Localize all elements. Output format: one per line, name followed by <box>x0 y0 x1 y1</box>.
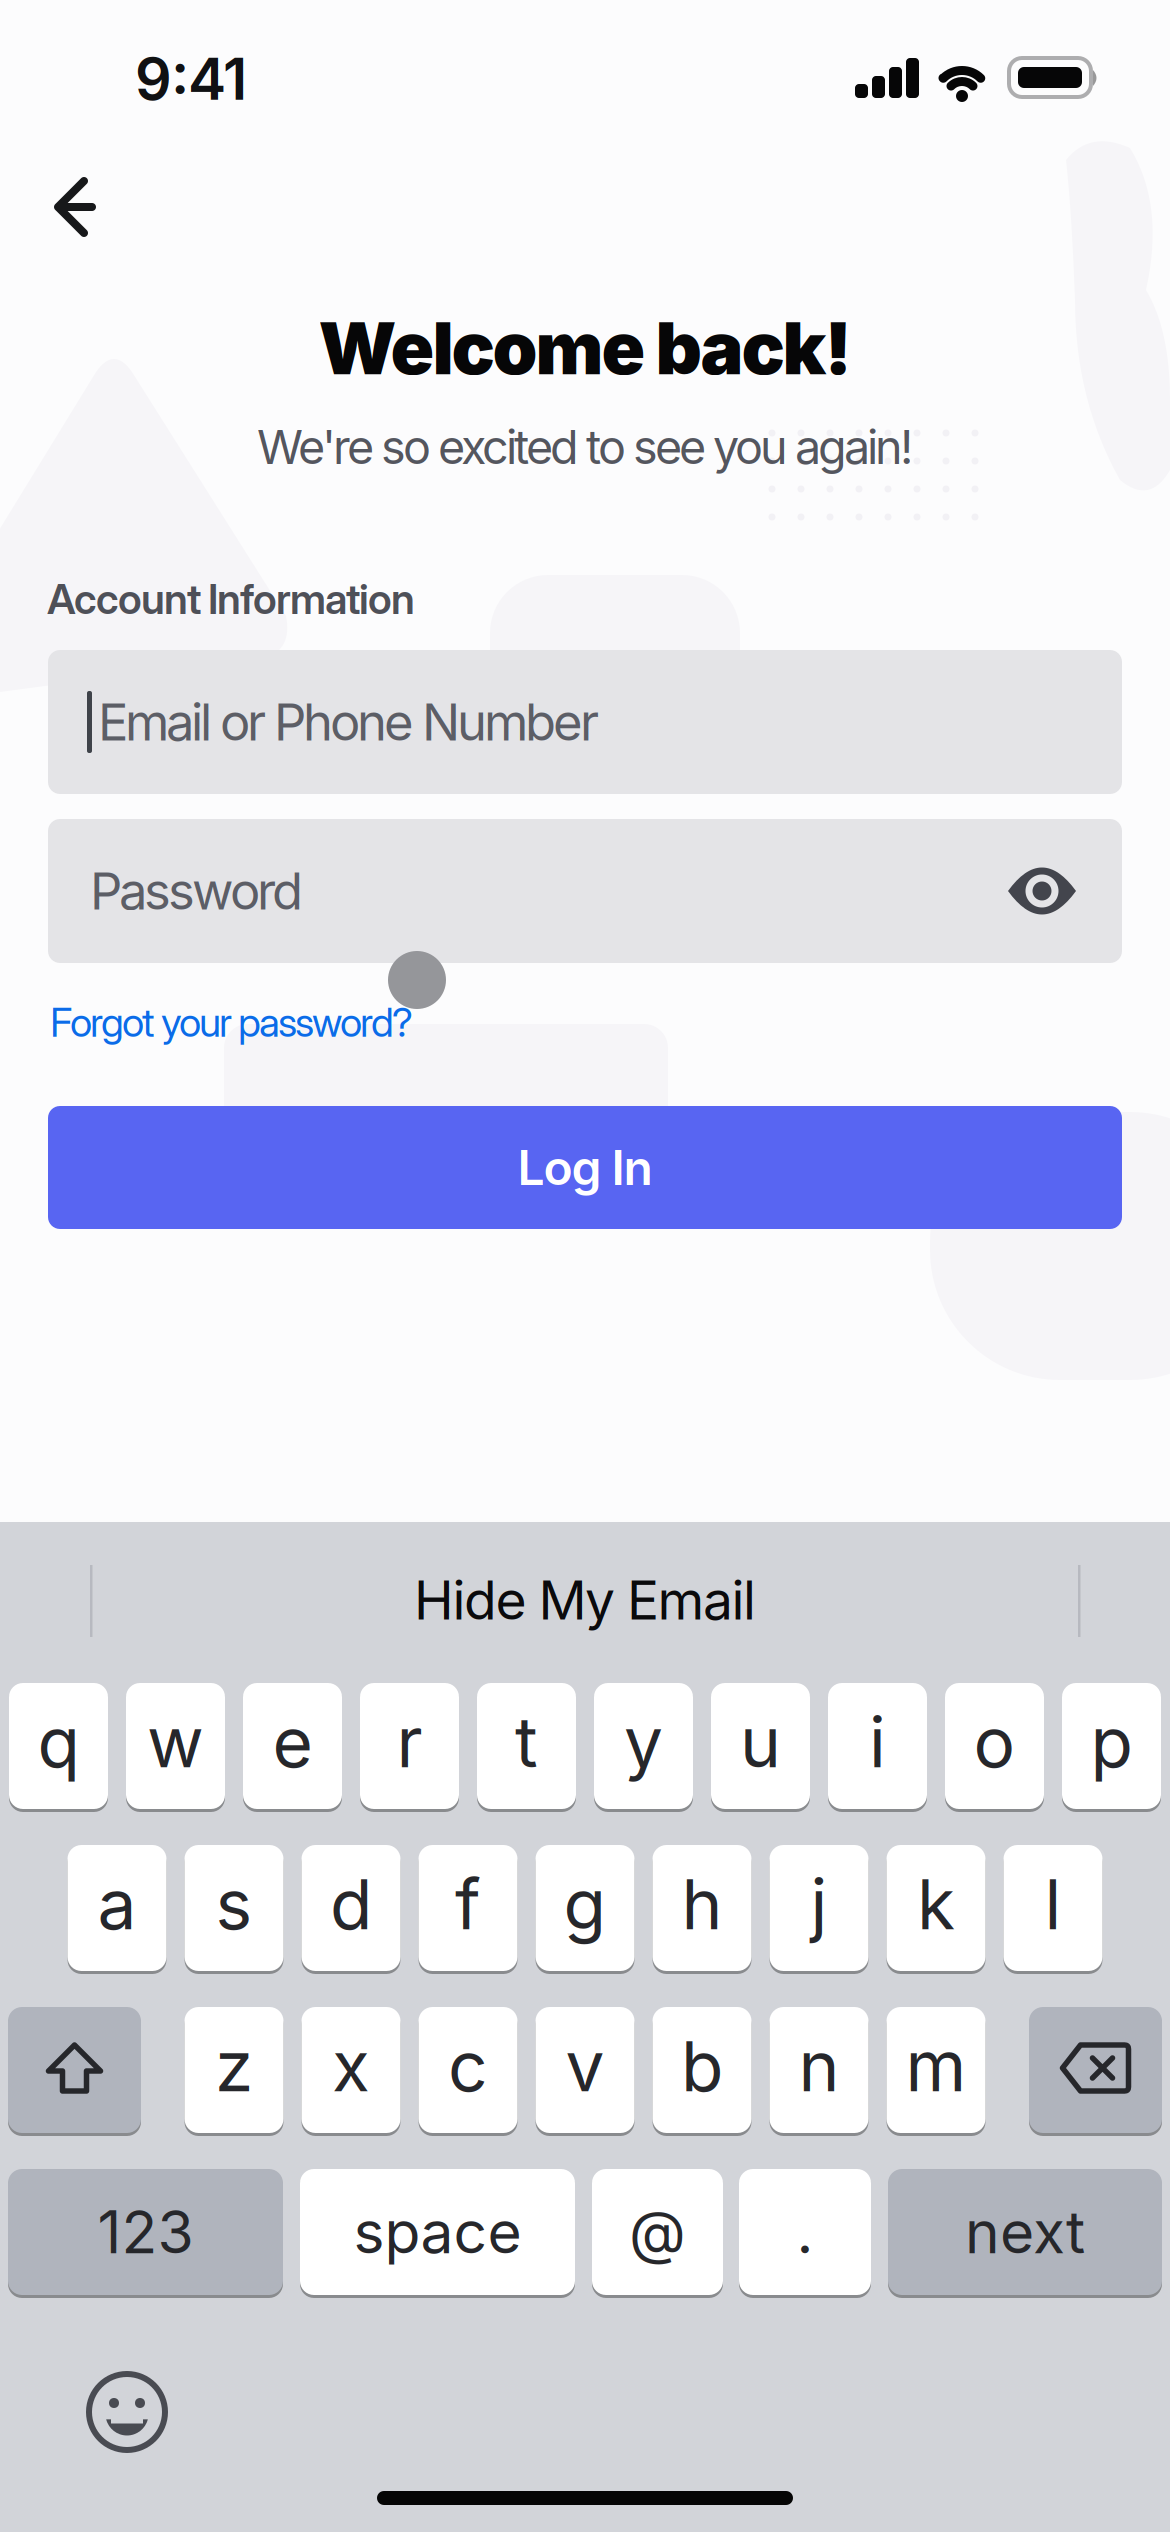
staticText: n <box>798 2024 839 2108</box>
button[interactable]: i <box>828 1683 927 1809</box>
staticText: z <box>215 2024 253 2108</box>
button[interactable]: s <box>184 1845 283 1971</box>
button[interactable]: l <box>1003 1845 1102 1971</box>
staticText: @ <box>629 2196 686 2267</box>
button[interactable]: b <box>652 2007 751 2133</box>
button[interactable]: Log In <box>48 1106 1122 1229</box>
staticText: g <box>563 1862 606 1946</box>
staticText: x <box>332 2024 370 2108</box>
button[interactable]: Delete <box>1029 2007 1162 2133</box>
staticText: i <box>869 1700 886 1784</box>
button[interactable]: g <box>535 1845 634 1971</box>
button[interactable]: h <box>652 1845 751 1971</box>
staticText: r <box>396 1700 422 1784</box>
staticText: Forgot your password? <box>50 998 413 1046</box>
staticText: h <box>681 1862 722 1946</box>
staticText: s <box>215 1862 252 1946</box>
button[interactable]: m <box>886 2007 985 2133</box>
staticText: d <box>330 1862 372 1946</box>
staticText: y <box>624 1700 663 1784</box>
staticText: next <box>965 2196 1085 2267</box>
button[interactable]: y <box>594 1683 693 1809</box>
button[interactable]: r <box>360 1683 459 1809</box>
staticText: e <box>272 1700 312 1784</box>
staticText: f <box>455 1862 481 1946</box>
staticText: b <box>681 2024 723 2108</box>
button[interactable]: j <box>769 1845 868 1971</box>
button[interactable]: f <box>418 1845 517 1971</box>
button[interactable]: o <box>945 1683 1044 1809</box>
staticText: p <box>1090 1700 1132 1784</box>
staticText: Hide My Email <box>414 1568 756 1632</box>
staticText: space <box>353 2196 521 2267</box>
staticText: 9:41 <box>135 44 247 114</box>
button[interactable]: k <box>886 1845 985 1971</box>
button[interactable]: @ <box>592 2169 723 2295</box>
button[interactable]: Back <box>0 0 134 263</box>
button[interactable]: n <box>769 2007 868 2133</box>
button[interactable]: Shift <box>8 2007 141 2133</box>
button[interactable]: Forgot your password? <box>0 0 413 1046</box>
button[interactable]: Show password <box>1008 868 1122 914</box>
button[interactable]: Emoji <box>73 2358 181 2466</box>
staticText: o <box>973 1700 1015 1784</box>
staticText: Log In <box>517 1138 652 1197</box>
button[interactable]: x <box>301 2007 400 2133</box>
button[interactable]: Password <box>48 819 1122 963</box>
staticText: u <box>740 1700 781 1784</box>
button[interactable]: p <box>1062 1683 1161 1809</box>
staticText: Password <box>90 860 303 922</box>
button[interactable]: Email or Phone Number <box>48 650 1122 794</box>
staticText: We're so excited to see you again! <box>257 419 913 475</box>
button[interactable]: 123 <box>8 2169 283 2295</box>
button[interactable]: a <box>67 1845 166 1971</box>
staticText: Email or Phone Number <box>98 691 599 753</box>
staticText: k <box>917 1862 955 1946</box>
button[interactable]: Hide My Email <box>95 1525 1075 1675</box>
button[interactable]: z <box>184 2007 283 2133</box>
button[interactable]: v <box>535 2007 634 2133</box>
staticText: j <box>810 1862 827 1946</box>
button[interactable]: w <box>126 1683 225 1809</box>
staticText: 123 <box>97 2196 193 2267</box>
button[interactable]: . <box>739 2169 871 2295</box>
button[interactable]: c <box>418 2007 517 2133</box>
staticText: v <box>565 2024 604 2108</box>
button[interactable]: t <box>477 1683 576 1809</box>
staticText: t <box>515 1700 538 1784</box>
staticText: Account Information <box>47 574 415 624</box>
button[interactable]: q <box>9 1683 108 1809</box>
staticText: q <box>37 1700 79 1784</box>
button[interactable]: u <box>711 1683 810 1809</box>
button[interactable]: e <box>243 1683 342 1809</box>
staticText: m <box>905 2024 966 2108</box>
button[interactable]: next <box>888 2169 1162 2295</box>
staticText: . <box>796 2196 813 2267</box>
staticText: Welcome back! <box>318 304 851 391</box>
button[interactable]: d <box>301 1845 400 1971</box>
staticText: w <box>147 1700 204 1784</box>
staticText: l <box>1044 1862 1061 1946</box>
button[interactable]: space <box>300 2169 575 2295</box>
staticText: a <box>97 1862 136 1946</box>
staticText: c <box>448 2024 488 2108</box>
